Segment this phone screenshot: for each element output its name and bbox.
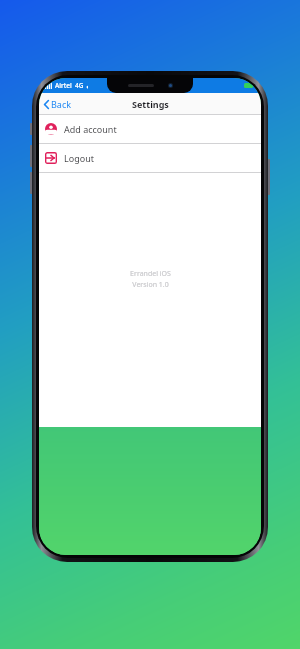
staticText: Errandel iOS (130, 269, 171, 279)
button[interactable]: Logout (39, 144, 261, 172)
staticText: Add account (64, 123, 117, 135)
button[interactable]: Add account (39, 115, 261, 143)
staticText: 4G (75, 81, 84, 90)
other: Logout (45, 152, 57, 164)
staticText: Logout (64, 152, 94, 164)
other: Add account (45, 123, 57, 135)
button[interactable]: Back (39, 94, 78, 114)
staticText: Version 1.0 (132, 280, 169, 290)
staticText: Back (51, 98, 72, 110)
staticText: Settings (132, 98, 169, 110)
staticText: Airtel (55, 81, 72, 90)
